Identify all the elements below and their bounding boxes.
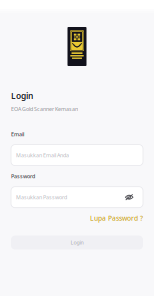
staticText: Email [11, 130, 24, 138]
staticText: Lupa Password ? [90, 214, 143, 223]
staticText: Password [11, 173, 35, 180]
staticText: Masukkan Email Anda [16, 152, 69, 159]
staticText: Login [11, 90, 33, 101]
staticText: Login [70, 239, 83, 246]
staticText: Masukkan Password [16, 194, 67, 201]
button[interactable]: Lupa Password ? [90, 214, 143, 223]
staticText: EOA Gold Scanner Kemasan [11, 105, 78, 112]
button[interactable]: Login [11, 235, 143, 249]
button[interactable]: Show password [125, 194, 133, 201]
